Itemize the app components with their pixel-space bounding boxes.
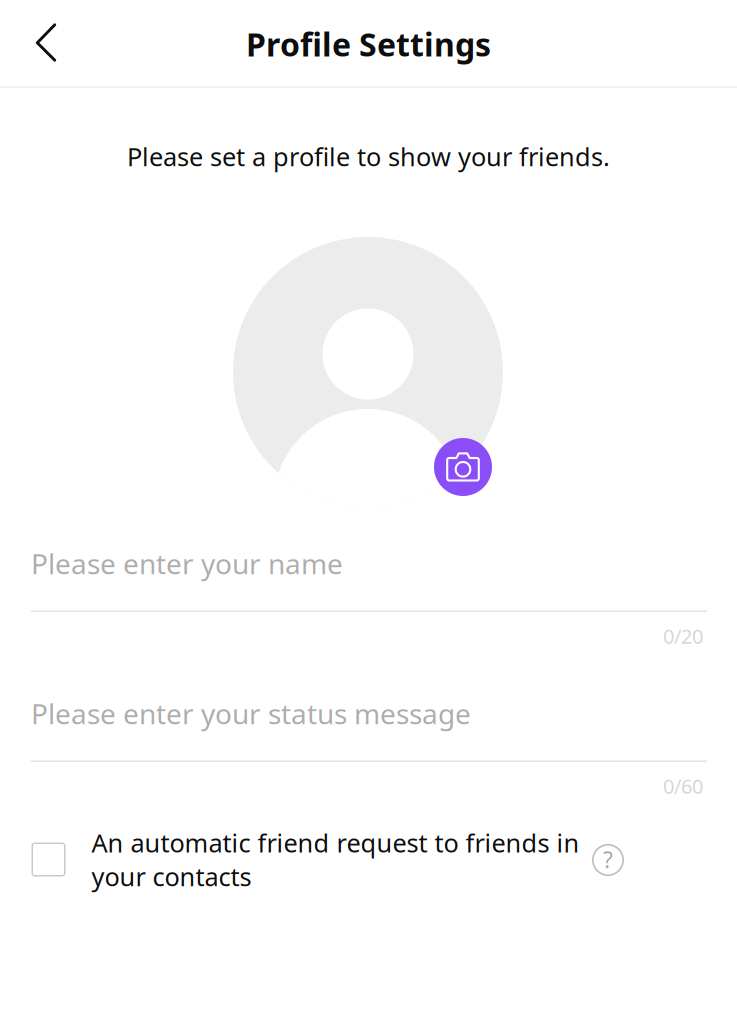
button[interactable]: Please enter your name bbox=[31, 548, 707, 612]
button[interactable]: Change profile photo bbox=[434, 438, 492, 496]
staticText: An automatic friend request to friends i… bbox=[91, 826, 579, 893]
staticText: Please set a profile to show your friend… bbox=[127, 140, 610, 173]
staticText: Profile Settings bbox=[246, 23, 491, 65]
staticText: 0/20 bbox=[663, 623, 703, 649]
staticText: Please enter your name bbox=[31, 545, 343, 582]
staticText: 0/60 bbox=[663, 773, 703, 799]
button[interactable]: An automatic friend request to friends i… bbox=[31, 828, 583, 890]
button[interactable]: Help bbox=[592, 844, 624, 876]
staticText: ? bbox=[603, 844, 613, 874]
staticText: Please enter your status message bbox=[31, 695, 471, 732]
button[interactable]: Back bbox=[6, 0, 86, 85]
button[interactable]: Please enter your status message bbox=[31, 698, 707, 762]
